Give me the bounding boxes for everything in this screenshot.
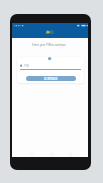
staticText: Enter your PIN to continue	[11, 43, 87, 47]
button[interactable]: Recent apps	[68, 152, 73, 157]
staticText: PIN	[24, 64, 29, 68]
button[interactable]: Back	[29, 152, 34, 157]
staticText: CONTINUE	[44, 77, 58, 81]
other: Account	[47, 57, 52, 61]
button[interactable]: CONTINUE	[26, 76, 76, 81]
button[interactable]: Home	[49, 152, 54, 157]
